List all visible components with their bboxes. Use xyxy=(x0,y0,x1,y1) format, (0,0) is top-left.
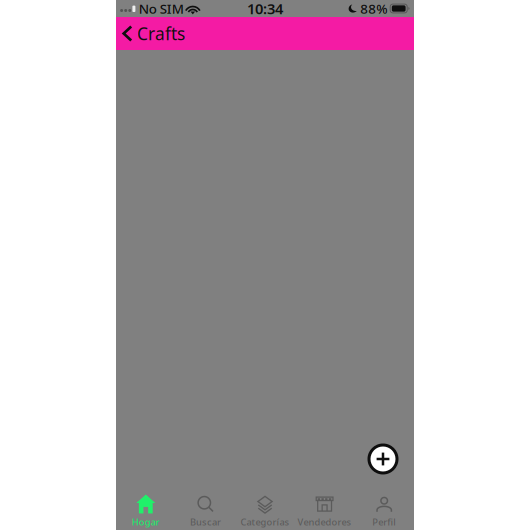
button[interactable]: Vendedores xyxy=(295,481,354,530)
staticText: Vendedores xyxy=(298,516,352,528)
staticText: Crafts xyxy=(137,22,185,45)
button[interactable]: Crafts xyxy=(116,17,195,50)
button[interactable]: Add xyxy=(361,437,405,481)
button[interactable]: Perfil xyxy=(354,481,414,530)
button[interactable]: Buscar xyxy=(176,481,235,530)
staticText: No SIM xyxy=(139,0,184,17)
staticText: Hogar xyxy=(132,516,160,528)
staticText: Buscar xyxy=(190,516,221,528)
staticText: 88% xyxy=(360,0,387,17)
staticText: Categorías xyxy=(240,516,289,528)
button[interactable]: Hogar xyxy=(116,481,176,530)
staticText: Perfil xyxy=(372,516,396,528)
button[interactable]: Categorías xyxy=(235,481,295,530)
staticText: 10:34 xyxy=(247,0,283,18)
